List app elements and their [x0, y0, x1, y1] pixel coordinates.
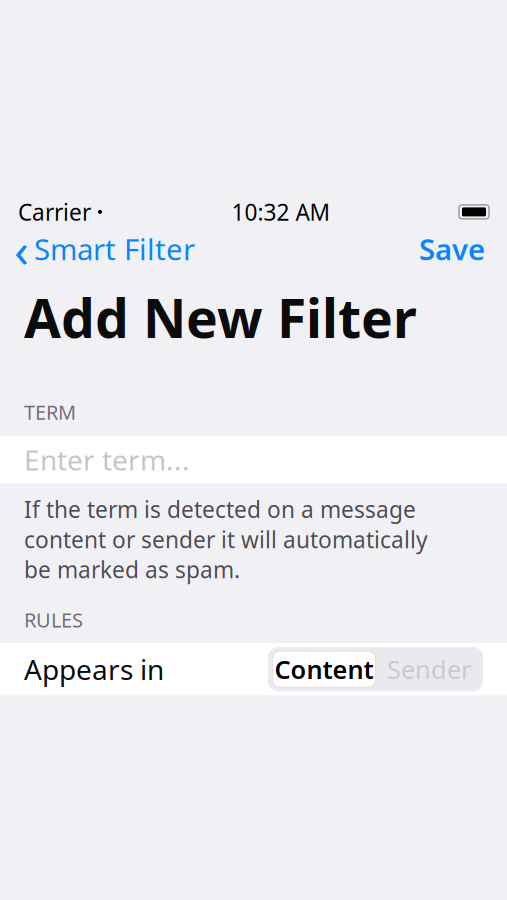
staticText: Enter term... [24, 441, 190, 478]
button[interactable]: Content [270, 649, 377, 689]
button[interactable]: Save [419, 223, 507, 274]
staticText: TERM [24, 399, 76, 425]
staticText: RULES [24, 607, 83, 633]
staticText: If the term is detected on a message con… [24, 494, 428, 585]
staticText: Appears in [24, 650, 164, 688]
button[interactable]: Sender [377, 649, 480, 689]
staticText: ‹ [14, 217, 29, 281]
button[interactable]: ‹ [0, 213, 195, 285]
staticText: Add New Filter [24, 282, 417, 353]
staticText: Smart Filter [34, 229, 195, 268]
staticText: 10:32 AM [231, 197, 330, 227]
staticText: Content [274, 652, 373, 686]
staticText: Carrier [18, 197, 91, 227]
staticText: Sender [387, 652, 471, 686]
staticText: Save [419, 229, 485, 268]
